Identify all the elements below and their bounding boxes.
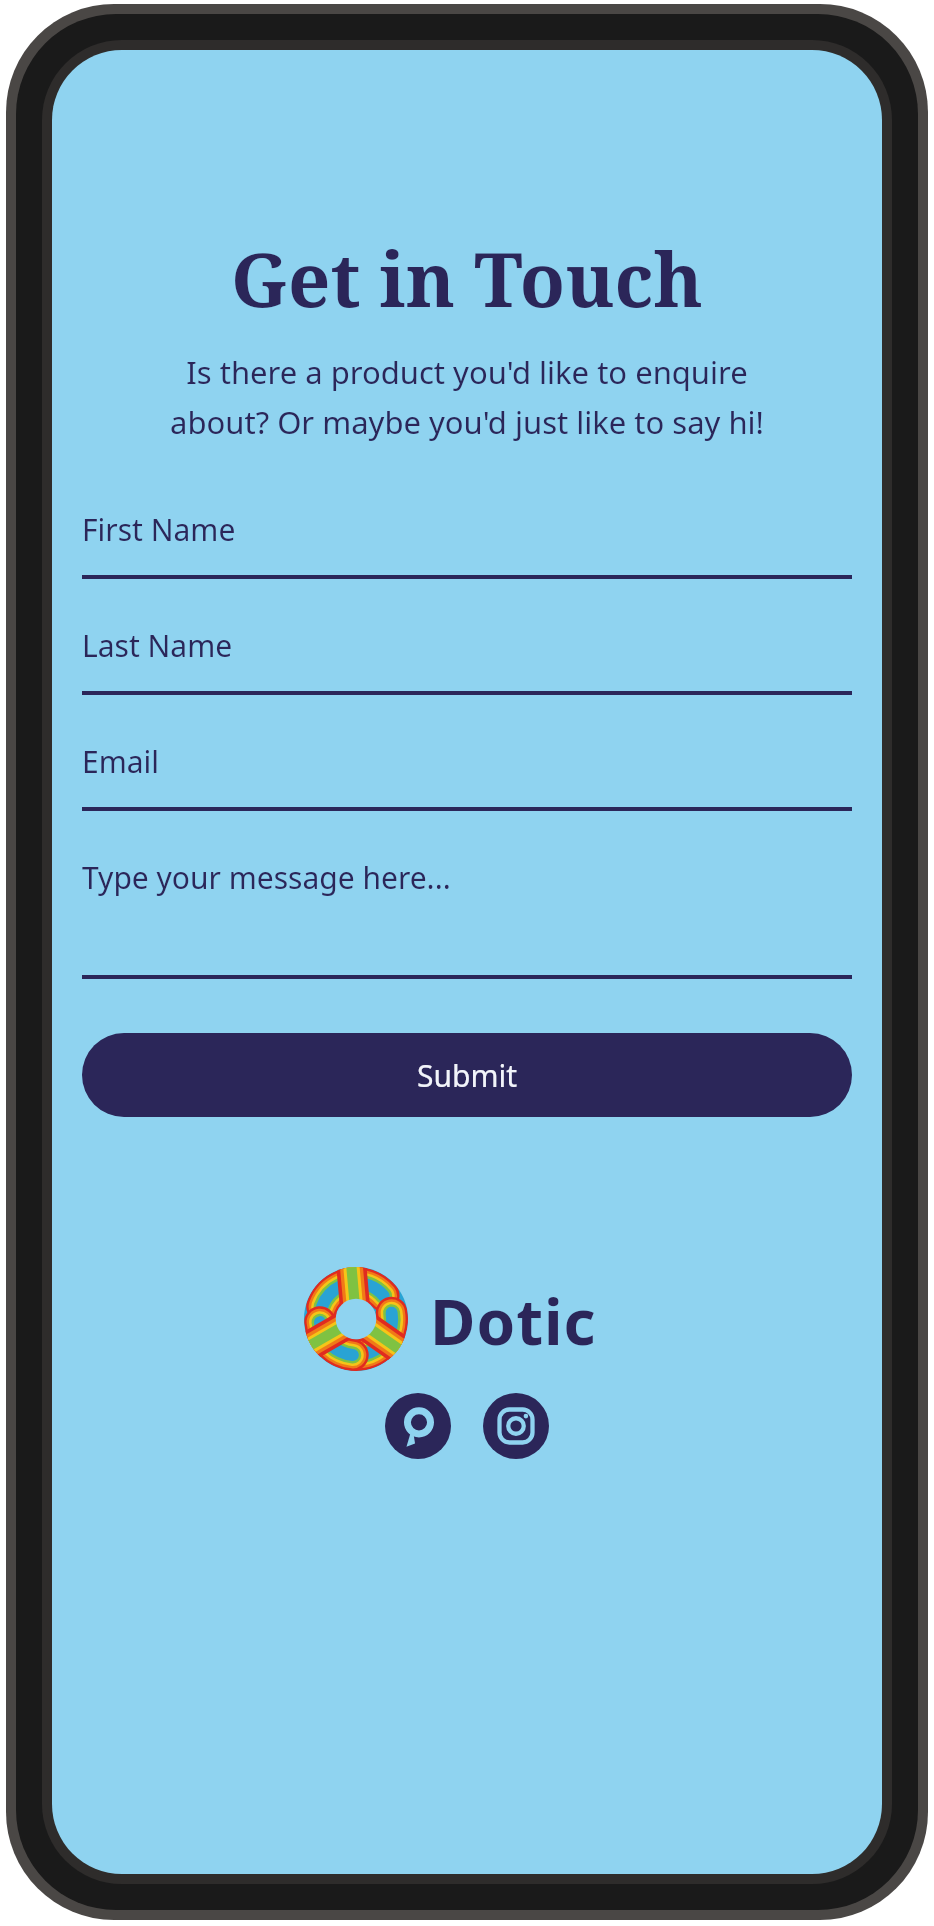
staticText: Is there a product you'd like to enquire… <box>78 351 856 443</box>
staticText: First Name <box>82 509 236 550</box>
button[interactable]: Pinterest <box>385 1393 451 1459</box>
button[interactable]: Instagram <box>483 1393 549 1459</box>
button[interactable]: First Name <box>82 509 852 625</box>
button[interactable]: Email <box>82 741 852 857</box>
staticText: Type your message here... <box>82 857 451 898</box>
staticText: Get in Touch <box>231 228 703 329</box>
button[interactable]: Last Name <box>82 625 852 741</box>
button[interactable]: Submit <box>82 1033 852 1117</box>
button[interactable]: Type your message here... <box>82 857 852 979</box>
staticText: Email <box>82 741 160 782</box>
staticText: Dotico <box>430 1279 630 1359</box>
staticText: Last Name <box>82 625 233 666</box>
staticText: Submit <box>417 1055 518 1096</box>
button[interactable]: Dotico <box>304 1267 630 1371</box>
